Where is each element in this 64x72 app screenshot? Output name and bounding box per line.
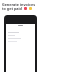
staticText: Generate invoices: [2, 2, 35, 7]
staticText: to get paid: [2, 6, 22, 11]
